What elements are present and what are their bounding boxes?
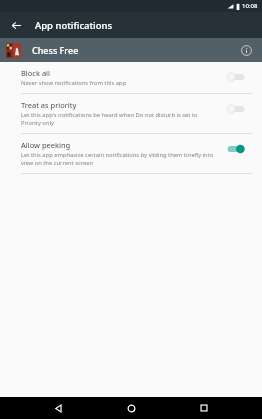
staticText: Chess Free bbox=[32, 44, 79, 56]
staticText: Block all bbox=[21, 68, 50, 78]
button[interactable]: Back bbox=[43, 397, 73, 419]
button[interactable]: Allow peeking bbox=[226, 141, 252, 157]
staticText: Treat as priority bbox=[21, 100, 77, 110]
button[interactable]: Treat as priority bbox=[226, 101, 252, 117]
staticText: 10:08 bbox=[242, 2, 258, 10]
staticText: Never show notifications from this app bbox=[21, 79, 127, 87]
button[interactable]: Block all bbox=[226, 69, 252, 85]
button[interactable]: App info bbox=[236, 40, 256, 60]
button[interactable]: Block all bbox=[0, 62, 262, 93]
staticText: Let this app emphasize certain notificat… bbox=[21, 151, 218, 167]
button[interactable]: Chess Free bbox=[0, 38, 262, 62]
staticText: Allow peeking bbox=[21, 140, 71, 150]
staticText: Let this app's notifications be heard wh… bbox=[21, 111, 218, 127]
button[interactable]: Allow peeking bbox=[0, 134, 262, 173]
button[interactable]: Recent apps bbox=[189, 397, 219, 419]
staticText: App notifications bbox=[35, 19, 113, 32]
button[interactable]: Home bbox=[116, 397, 146, 419]
button[interactable]: Treat as priority bbox=[0, 94, 262, 133]
button[interactable]: Navigate up bbox=[5, 14, 27, 36]
